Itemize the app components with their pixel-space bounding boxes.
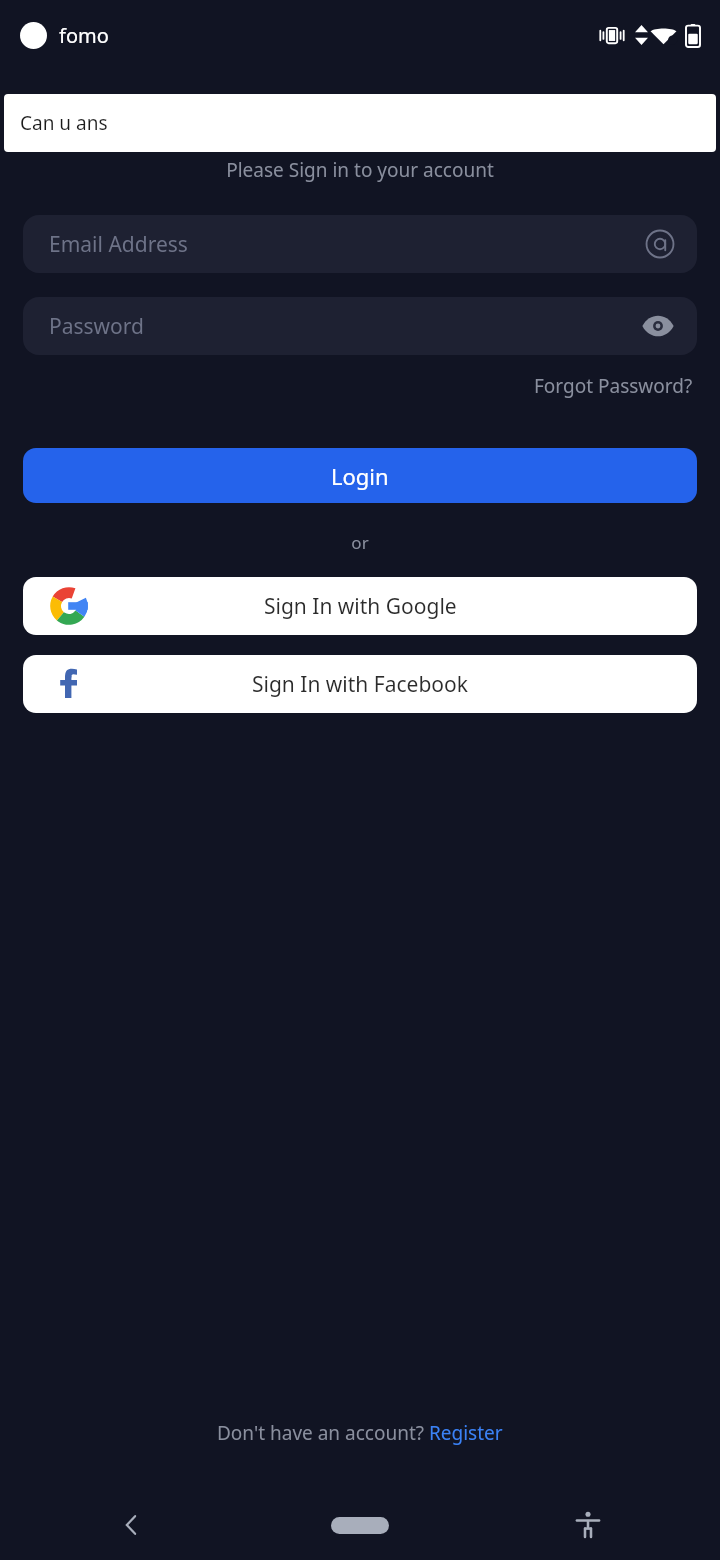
staticText: fomo bbox=[59, 22, 109, 49]
staticText: or bbox=[0, 531, 720, 554]
button[interactable]: Home bbox=[325, 1505, 395, 1545]
button[interactable]: Email Address bbox=[23, 215, 697, 273]
other: Show password bbox=[641, 309, 675, 343]
button[interactable]: Sign In with Google bbox=[23, 577, 697, 635]
button[interactable]: Forgot Password? bbox=[530, 369, 697, 403]
staticText: Sign In with Google bbox=[264, 592, 457, 621]
staticText: Can u ans bbox=[20, 110, 108, 136]
staticText: Sign In with Facebook bbox=[252, 670, 468, 699]
button[interactable]: Password bbox=[23, 297, 697, 355]
staticText: Please Sign in to your account bbox=[0, 157, 720, 183]
button[interactable]: Login bbox=[23, 448, 697, 503]
button[interactable]: Don't have an account? Register bbox=[213, 1416, 507, 1450]
button[interactable]: Sign In with Facebook bbox=[23, 655, 697, 713]
button[interactable]: Back bbox=[108, 1501, 156, 1549]
staticText: Email Address bbox=[49, 230, 188, 259]
button[interactable]: Accessibility bbox=[564, 1501, 612, 1549]
staticText: Login bbox=[331, 461, 389, 491]
staticText: Password bbox=[49, 312, 144, 341]
other: Email bbox=[645, 229, 675, 259]
staticText: Don't have an account? Register bbox=[217, 1420, 503, 1446]
button[interactable]: Can u ans bbox=[4, 94, 716, 152]
